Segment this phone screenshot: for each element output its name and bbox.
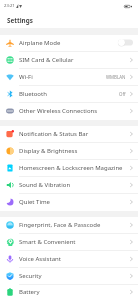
staticText: WMBLAN [106, 74, 126, 80]
staticText: Airplane Mode [19, 39, 61, 47]
staticText: SIM Card & Cellular [19, 56, 74, 64]
button[interactable]: Security [0, 268, 138, 285]
button[interactable]: Smart & Convenient [0, 234, 138, 251]
staticText: Settings [7, 16, 33, 25]
staticText: Voice Assistant [19, 255, 61, 263]
staticText: Notification & Status Bar [19, 130, 89, 138]
button[interactable]: Wi-Fi [0, 69, 138, 86]
staticText: Homescreen & Lockscreen Magazine [19, 164, 123, 172]
staticText: Fingerprint, Face & Passcode [19, 221, 101, 229]
staticText: Sound & Vibration [19, 181, 71, 189]
staticText: Battery [19, 288, 40, 296]
button[interactable]: Quiet Time [0, 194, 138, 211]
button[interactable]: Display & Brightness [0, 143, 138, 160]
staticText: Quiet Time [19, 198, 50, 206]
button[interactable]: Voice Assistant [0, 251, 138, 268]
button[interactable]: SIM Card & Cellular [0, 52, 138, 69]
staticText: Off [119, 91, 126, 97]
staticText: Wi-Fi [19, 73, 33, 81]
button[interactable]: Fingerprint, Face & Passcode [0, 217, 138, 234]
staticText: Other Wireless Connections [19, 107, 98, 115]
staticText: Display & Brightness [19, 147, 78, 155]
staticText: Bluetooth [19, 90, 47, 98]
button[interactable]: Notification & Status Bar [0, 126, 138, 143]
staticText: Security [19, 272, 42, 280]
staticText: 23:21 [4, 3, 15, 9]
button[interactable]: Battery [0, 285, 138, 300]
button[interactable]: Homescreen & Lockscreen Magazine [0, 160, 138, 177]
button[interactable]: Other Wireless Connections [0, 103, 138, 120]
staticText: Smart & Convenient [19, 238, 76, 246]
button[interactable]: Airplane Mode [0, 35, 138, 52]
button[interactable]: Sound & Vibration [0, 177, 138, 194]
button[interactable]: Airplane mode toggle [118, 39, 133, 46]
button[interactable]: Bluetooth [0, 86, 138, 103]
